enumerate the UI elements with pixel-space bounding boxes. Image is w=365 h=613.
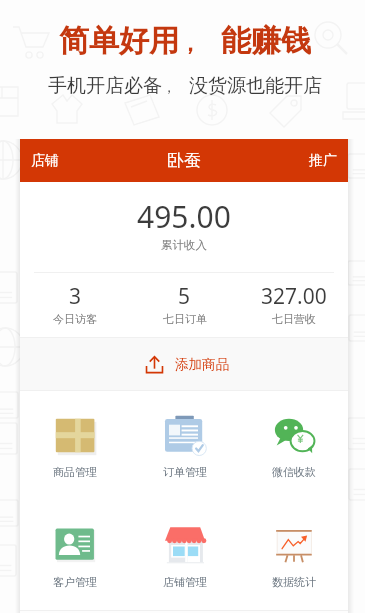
staticText: 商品管理 (53, 465, 97, 479)
staticText: 微信收款 (272, 465, 316, 479)
staticText: 数据统计 (272, 575, 316, 589)
button[interactable]: 客户管理 (20, 500, 130, 610)
staticText: 3 (69, 282, 82, 311)
staticText: 添加商品 (175, 356, 229, 373)
staticText: 订单管理 (163, 465, 207, 479)
button[interactable]: 微信收款 (239, 391, 348, 500)
staticText: 客户管理 (53, 575, 97, 589)
button[interactable]: 推广 (299, 144, 348, 178)
staticText: 手机开店必备， (48, 74, 176, 98)
staticText: 今日访客 (53, 312, 97, 326)
staticText: 店铺管理 (163, 575, 207, 589)
staticText: 七日营收 (272, 312, 316, 326)
button[interactable]: 店铺管理 (130, 500, 239, 610)
staticText: 5 (178, 282, 191, 311)
button[interactable]: 商品管理 (20, 391, 130, 500)
button[interactable]: 3 (20, 273, 130, 337)
staticText: 能赚钱 (221, 22, 311, 60)
button[interactable]: 327.00 (239, 273, 348, 337)
staticText: 327.00 (261, 282, 327, 311)
staticText: 没货源也能开店 (189, 74, 322, 98)
staticText: 495.00 (137, 196, 231, 237)
staticText: 推广 (309, 152, 337, 170)
button[interactable]: 添加商品 (20, 338, 348, 390)
button[interactable]: 店铺 (20, 144, 69, 178)
button[interactable]: 订单管理 (130, 391, 239, 500)
staticText: 店铺 (31, 152, 59, 170)
staticText: 累计收入 (161, 238, 207, 252)
staticText: 简单好用， (59, 22, 201, 60)
button[interactable]: 数据统计 (239, 500, 348, 610)
staticText: 卧蚕 (167, 150, 201, 171)
staticText: 七日订单 (163, 312, 207, 326)
button[interactable]: 5 (130, 273, 239, 337)
